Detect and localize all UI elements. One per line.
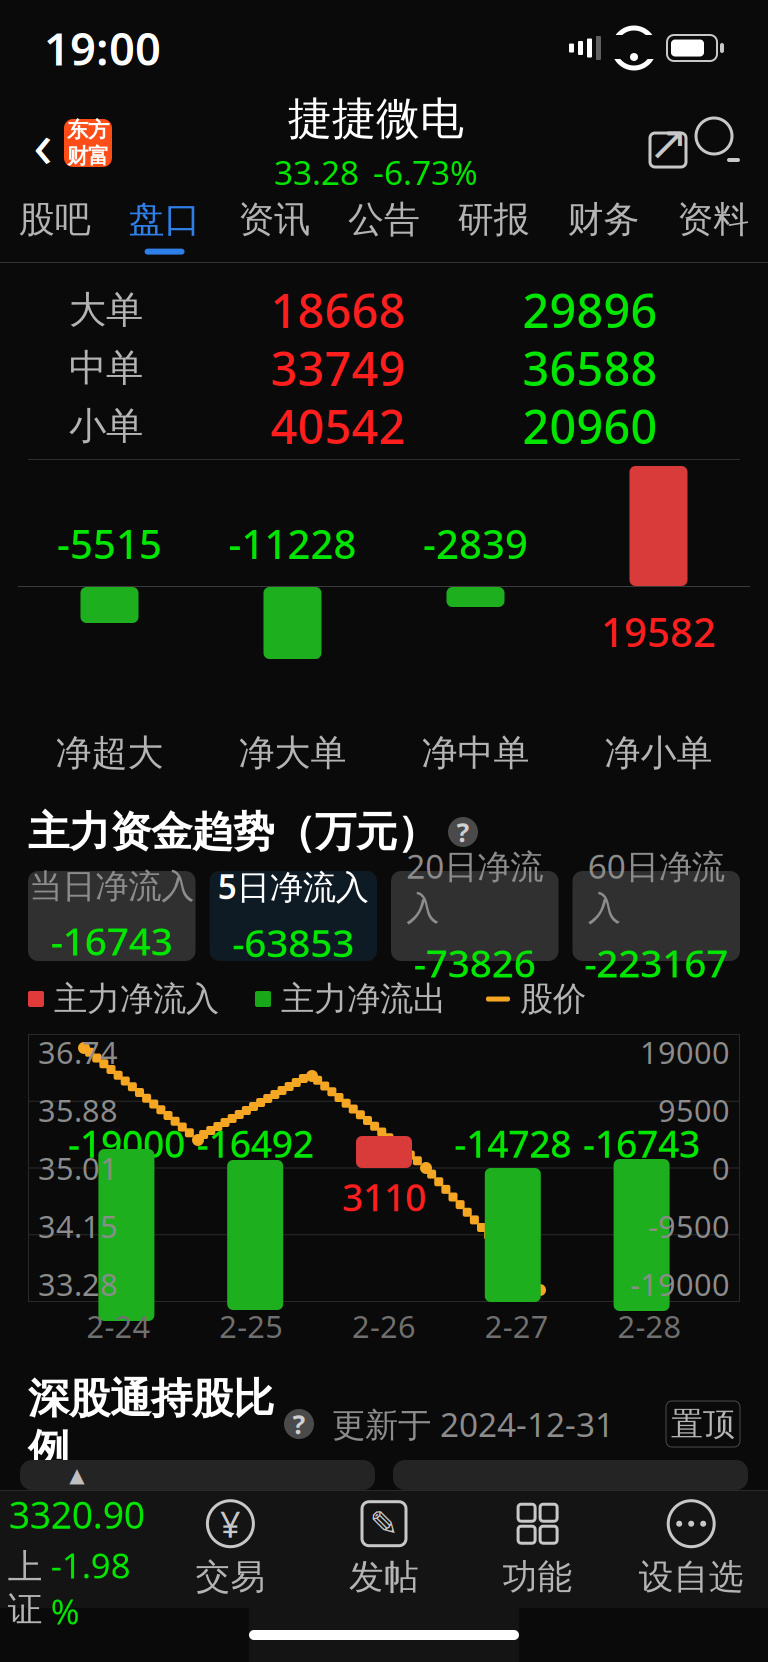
staticText: 19:00 [44,18,161,78]
staticText: -14728 [454,1118,571,1168]
button[interactable]: 盘口 [110,190,219,262]
staticText: 置顶 [671,1404,735,1444]
staticText: ‹ [33,100,53,185]
staticText: 中单 [69,345,143,391]
staticText: -11228 [228,517,356,570]
staticText: 资讯 [238,197,310,242]
staticText: -73826 [414,937,536,988]
staticText: -1.98% [51,1542,131,1634]
staticText: -223167 [584,937,728,988]
staticText: -16743 [583,1118,700,1168]
staticText: 财务 [567,197,639,242]
button[interactable]: 上证指数 [0,1490,154,1608]
staticText: 5日净流入 [218,864,369,908]
staticText: -16492 [197,1118,314,1168]
staticText: 2-27 [485,1306,549,1346]
staticText: -6.73% [373,150,478,194]
button[interactable]: 说明 [448,817,478,847]
staticText: 2-24 [86,1306,150,1346]
staticText: ? [292,1406,305,1442]
staticText: 主力净流入 [54,978,219,1019]
button[interactable]: 公告 [329,190,439,262]
staticText: 主力净流出 [281,978,446,1019]
button[interactable]: 20日净流入 [391,871,558,961]
staticText: -9500 [648,1206,730,1246]
staticText: 29896 [522,279,657,341]
staticText: 19582 [601,605,716,658]
button[interactable]: 60日净流入 [572,871,740,961]
staticText: 33.28 [38,1264,118,1304]
button[interactable]: 置顶 [666,1401,740,1447]
staticText: ? [456,814,469,850]
button[interactable]: 当日净流入 [28,871,195,961]
staticText: 净大单 [238,731,346,775]
button[interactable]: 财务 [549,190,658,262]
staticText: 20日净流入 [406,844,543,929]
staticText: 股吧 [19,197,91,242]
staticText: 60日净流入 [588,844,725,929]
button[interactable]: 研报 [439,190,549,262]
staticText: 财富 [67,143,109,169]
staticText: 35.88 [38,1090,118,1130]
button[interactable]: 5日净流入 [209,871,377,961]
staticText: 净超大 [55,731,163,775]
staticText: 设自选 [639,1556,744,1598]
staticText: 2-25 [219,1306,283,1346]
staticText: 东方 [67,117,109,143]
staticText: -16743 [51,915,173,966]
staticText: 大单 [69,287,143,333]
staticText: 更新于 2024-12-31 [332,1402,614,1446]
staticText: 资料 [677,197,749,242]
staticText: 净小单 [604,731,712,775]
staticText: 2-28 [618,1306,682,1346]
staticText: 40542 [270,395,405,457]
button[interactable]: 设自选 [614,1490,768,1608]
button[interactable]: 资料 [658,190,768,262]
button[interactable]: ¥ [154,1490,307,1608]
staticText: 2-26 [352,1306,416,1346]
button[interactable]: 资讯 [219,190,329,262]
button[interactable]: 返回 [22,111,64,175]
button[interactable]: 东方财富 [64,119,112,167]
staticText: ▲ [69,1464,84,1486]
staticText: 33749 [270,337,405,399]
staticText: 功能 [503,1556,573,1598]
button[interactable]: 说明 [284,1409,314,1439]
staticText: -63853 [232,916,354,968]
staticText: 34.15 [38,1206,118,1246]
button[interactable]: 搜索 [696,118,746,168]
staticText: -19000 [68,1118,185,1168]
staticText: ↗ [648,116,688,170]
staticText: 3110 [342,1172,426,1222]
staticText: -5515 [57,517,162,570]
staticText: 公告 [348,197,420,242]
staticText: 3320.90 [9,1489,145,1539]
staticText: 发帖 [349,1556,419,1598]
staticText: 上证 [8,1546,43,1631]
staticText: 小单 [69,403,143,449]
staticText: 主力资金趋势（万元） [28,807,438,857]
button[interactable]: 分享 [640,115,696,171]
staticText: ¥ [220,1500,241,1548]
staticText: 研报 [458,197,530,242]
staticText: 深股通持股比例 [28,1373,274,1475]
staticText: -19000 [630,1264,730,1304]
staticText: 35.01 [38,1148,118,1188]
staticText: 36588 [522,337,657,399]
staticText: 股价 [520,978,586,1019]
staticText: 20960 [522,395,657,457]
staticText: 交易 [195,1556,265,1598]
staticText: 9500 [658,1090,730,1130]
staticText: -2839 [423,517,528,570]
staticText: 19000 [640,1032,730,1072]
staticText: 盘口 [129,197,201,242]
button[interactable]: 股吧 [0,190,110,262]
staticText: ✎ [369,1504,398,1543]
staticText: 当日净流入 [29,866,194,907]
staticText: 捷捷微电 [288,92,464,146]
staticText: 33.28 [274,150,359,194]
button[interactable]: 功能 [461,1490,614,1608]
button[interactable]: ✎ [307,1490,461,1608]
staticText: 0 [712,1148,730,1188]
staticText: 18668 [270,279,405,341]
